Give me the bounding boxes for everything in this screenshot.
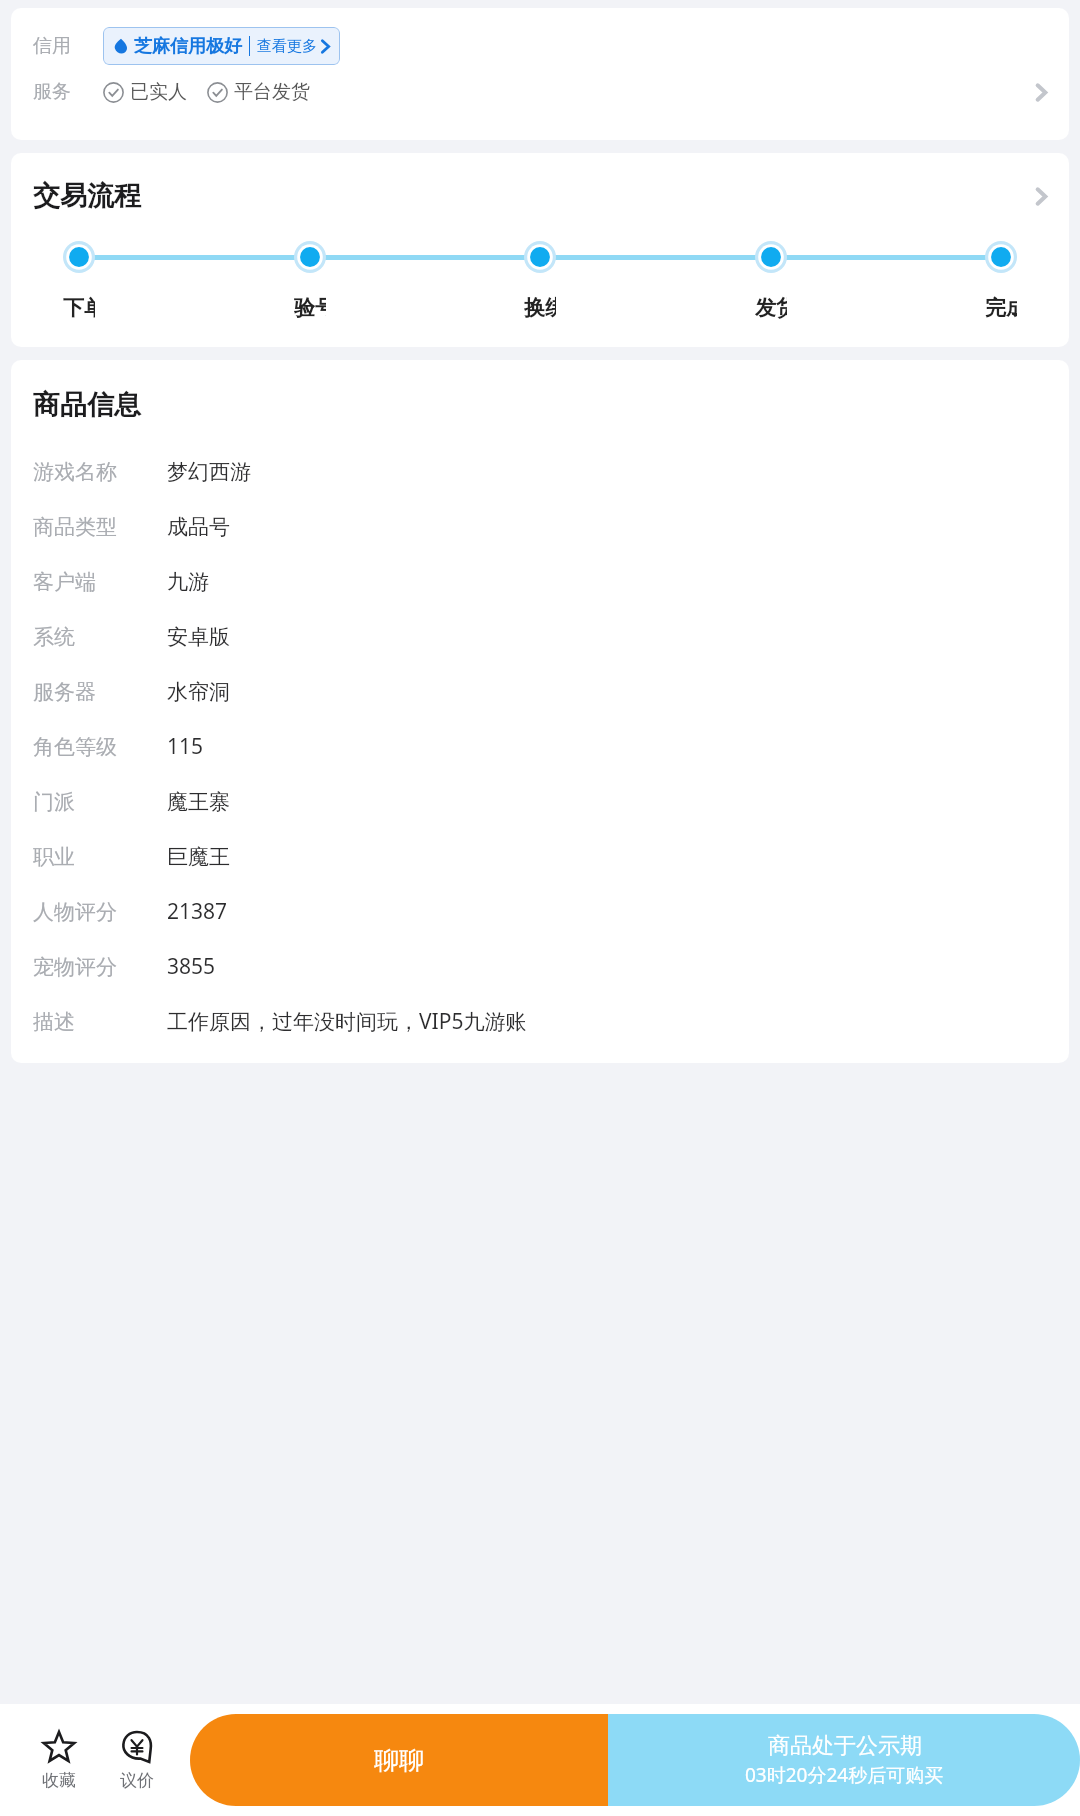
staticText: 系统 (33, 624, 75, 650)
staticText: 3855 (167, 952, 216, 981)
staticText: 成品号 (167, 514, 230, 540)
staticText: 工作原因，过年没时间玩，VIP5九游账 (167, 1007, 527, 1036)
staticText: 平台发货 (234, 80, 310, 104)
staticText: 聊聊 (374, 1745, 424, 1776)
staticText: 交易流程 (33, 179, 141, 213)
staticText: 九游 (167, 569, 209, 595)
button[interactable]: 芝麻信用极好 (103, 27, 340, 65)
staticText: 收藏 (42, 1770, 76, 1791)
button[interactable]: 聊聊 (190, 1714, 608, 1806)
staticText: 服务 (33, 80, 71, 104)
staticText: 21387 (167, 897, 228, 926)
staticText: 议价 (120, 1770, 154, 1791)
staticText: 商品信息 (33, 388, 141, 422)
button[interactable]: 交易流程 (11, 153, 1069, 347)
button[interactable]: 服务 (11, 70, 1069, 114)
staticText: 芝麻信用极好 (134, 35, 242, 58)
staticText: 水帘洞 (167, 679, 230, 705)
staticText: 完成 (985, 295, 1017, 321)
staticText: 查看更多 (257, 37, 317, 56)
staticText: 信用 (33, 34, 71, 58)
staticText: 换绑 (524, 295, 556, 321)
staticText: 验号 (294, 295, 326, 321)
staticText: 门派 (33, 789, 75, 815)
button[interactable]: 收藏 (20, 1704, 98, 1816)
staticText: 服务器 (33, 679, 96, 705)
staticText: 已实人 (130, 80, 187, 104)
staticText: 魔王寨 (167, 789, 230, 815)
staticText: 115 (167, 732, 204, 761)
button[interactable]: 商品处于公示期 (608, 1714, 1080, 1806)
button[interactable]: 议价 (98, 1704, 176, 1816)
staticText: 客户端 (33, 569, 96, 595)
staticText: 商品处于公示期 (768, 1732, 922, 1760)
staticText: 下单 (63, 295, 95, 321)
staticText: 发货 (755, 295, 787, 321)
staticText: 角色等级 (33, 734, 117, 760)
staticText: 商品类型 (33, 514, 117, 540)
staticText: 职业 (33, 844, 75, 870)
staticText: 游戏名称 (33, 459, 117, 485)
staticText: 03时20分24秒后可购买 (745, 1762, 944, 1788)
staticText: 梦幻西游 (167, 459, 251, 485)
staticText: 宠物评分 (33, 954, 117, 980)
staticText: 巨魔王 (167, 844, 230, 870)
staticText: 描述 (33, 1009, 75, 1035)
staticText: 人物评分 (33, 899, 117, 925)
staticText: 安卓版 (167, 624, 230, 650)
